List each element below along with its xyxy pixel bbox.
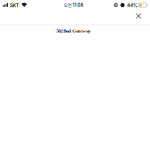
button[interactable]: Close [129, 7, 148, 24]
staticText: 오전 11:08 [64, 2, 84, 8]
staticText: SKT [10, 3, 19, 8]
staticText: 502 Bad Gateway [56, 28, 90, 33]
staticText: 44% [127, 3, 138, 8]
